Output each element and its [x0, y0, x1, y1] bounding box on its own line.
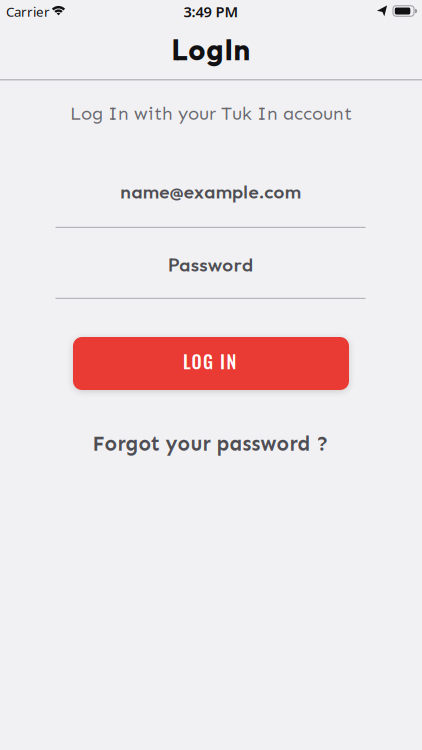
staticText: Forgot your password ? [92, 431, 328, 456]
staticText: LOG IN [183, 348, 237, 375]
button[interactable]: name@example.com [55, 170, 365, 228]
staticText: 3:49 PM [183, 2, 238, 21]
staticText: Log In with your Tuk In account [70, 102, 352, 125]
button[interactable]: LOG IN [73, 337, 349, 390]
staticText: name@example.com [120, 179, 301, 203]
staticText: LogIn [171, 31, 250, 68]
staticText: Carrier [6, 3, 50, 20]
button[interactable]: Forgot your password ? [60, 427, 360, 461]
staticText: Password [168, 252, 253, 276]
button[interactable]: Password [55, 241, 365, 299]
